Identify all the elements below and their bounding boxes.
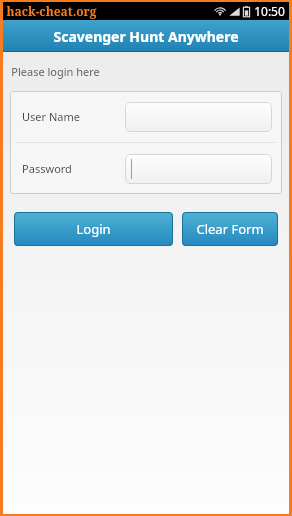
other: Wi-Fi: [214, 5, 226, 17]
staticText: Please login here: [11, 64, 100, 79]
staticText: Scavenger Hunt Anywhere: [53, 27, 239, 46]
staticText: 10:50: [254, 3, 285, 19]
staticText: Password: [22, 161, 72, 176]
staticText: User Name: [22, 109, 80, 124]
other: Signal: [229, 6, 240, 17]
button[interactable]: User Name: [10, 91, 282, 142]
button[interactable]: Clear Form: [182, 212, 278, 246]
staticText: Login: [76, 220, 111, 238]
other: Battery: [243, 6, 250, 17]
button[interactable]: Login: [14, 212, 173, 246]
staticText: Clear Form: [196, 220, 264, 238]
staticText: hack-cheat.org: [6, 3, 97, 19]
button[interactable]: Password: [10, 143, 282, 194]
